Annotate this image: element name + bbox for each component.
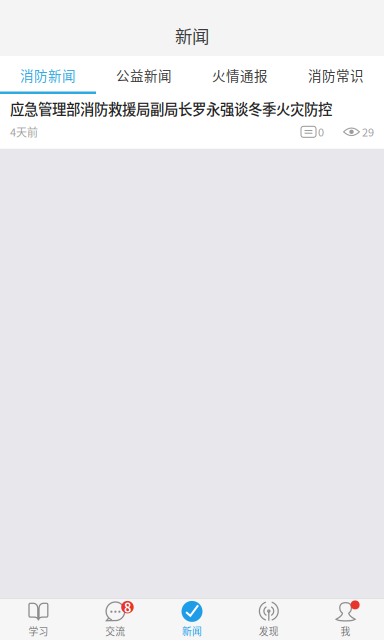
staticText: 0 <box>316 124 324 140</box>
button[interactable]: 消防新闻 <box>0 56 96 94</box>
staticText: 新闻 <box>175 23 209 48</box>
button[interactable]: 学习 <box>0 597 77 640</box>
staticText: 发现 <box>259 624 279 638</box>
button[interactable]: 公益新闻 <box>96 56 192 94</box>
staticText: 交流 <box>105 624 125 638</box>
button[interactable]: 8 <box>77 597 154 640</box>
staticText: 学习 <box>28 624 48 638</box>
staticText: 消防新闻 <box>20 65 76 85</box>
staticText: 8 <box>124 598 131 616</box>
staticText: 4天前 <box>10 124 38 140</box>
staticText: 公益新闻 <box>116 65 172 85</box>
staticText: 火情通报 <box>212 65 268 85</box>
button[interactable]: 我 <box>307 597 384 640</box>
staticText: 29 <box>360 124 374 140</box>
button[interactable]: 火情通报 <box>192 56 288 94</box>
button[interactable]: 应急管理部消防救援局副局长罗永强谈冬季火灾防控 <box>0 94 384 149</box>
button[interactable]: 新闻 <box>154 597 230 640</box>
button[interactable]: 消防常识 <box>288 56 384 94</box>
staticText: 应急管理部消防救援局副局长罗永强谈冬季火灾防控 <box>10 98 332 119</box>
staticText: 新闻 <box>182 624 202 638</box>
button[interactable]: 发现 <box>230 597 307 640</box>
staticText: 我 <box>341 624 351 638</box>
staticText: 消防常识 <box>308 65 364 85</box>
